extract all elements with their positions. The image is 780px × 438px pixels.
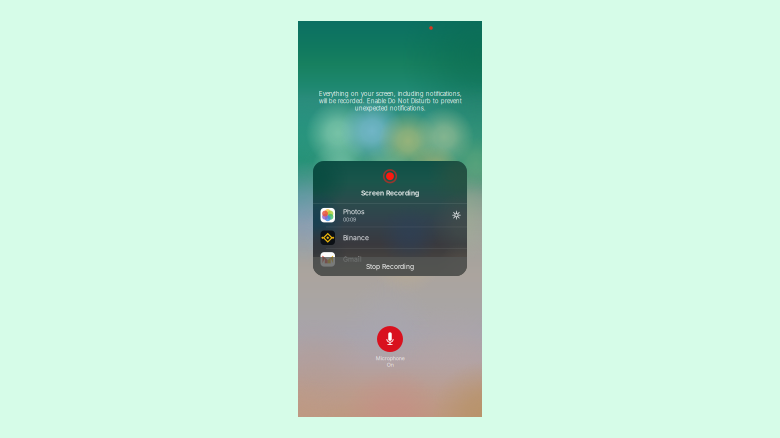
button[interactable]: Gmail [313, 249, 467, 270]
button[interactable]: Microphone On [377, 326, 403, 352]
staticText: Screen Recording [361, 189, 419, 197]
button[interactable]: Binance [313, 227, 467, 248]
staticText: Binance [343, 234, 369, 242]
staticText: Gmail [343, 255, 362, 263]
staticText: 00:09 [343, 216, 356, 223]
staticText: Microphone On [375, 355, 404, 368]
staticText: Everything on your screen, including not… [318, 90, 461, 112]
staticText: Stop Recording [366, 262, 414, 271]
staticText: Photos [343, 208, 365, 216]
button[interactable]: Stop Recording [313, 257, 467, 276]
button[interactable]: Photos [313, 204, 467, 227]
